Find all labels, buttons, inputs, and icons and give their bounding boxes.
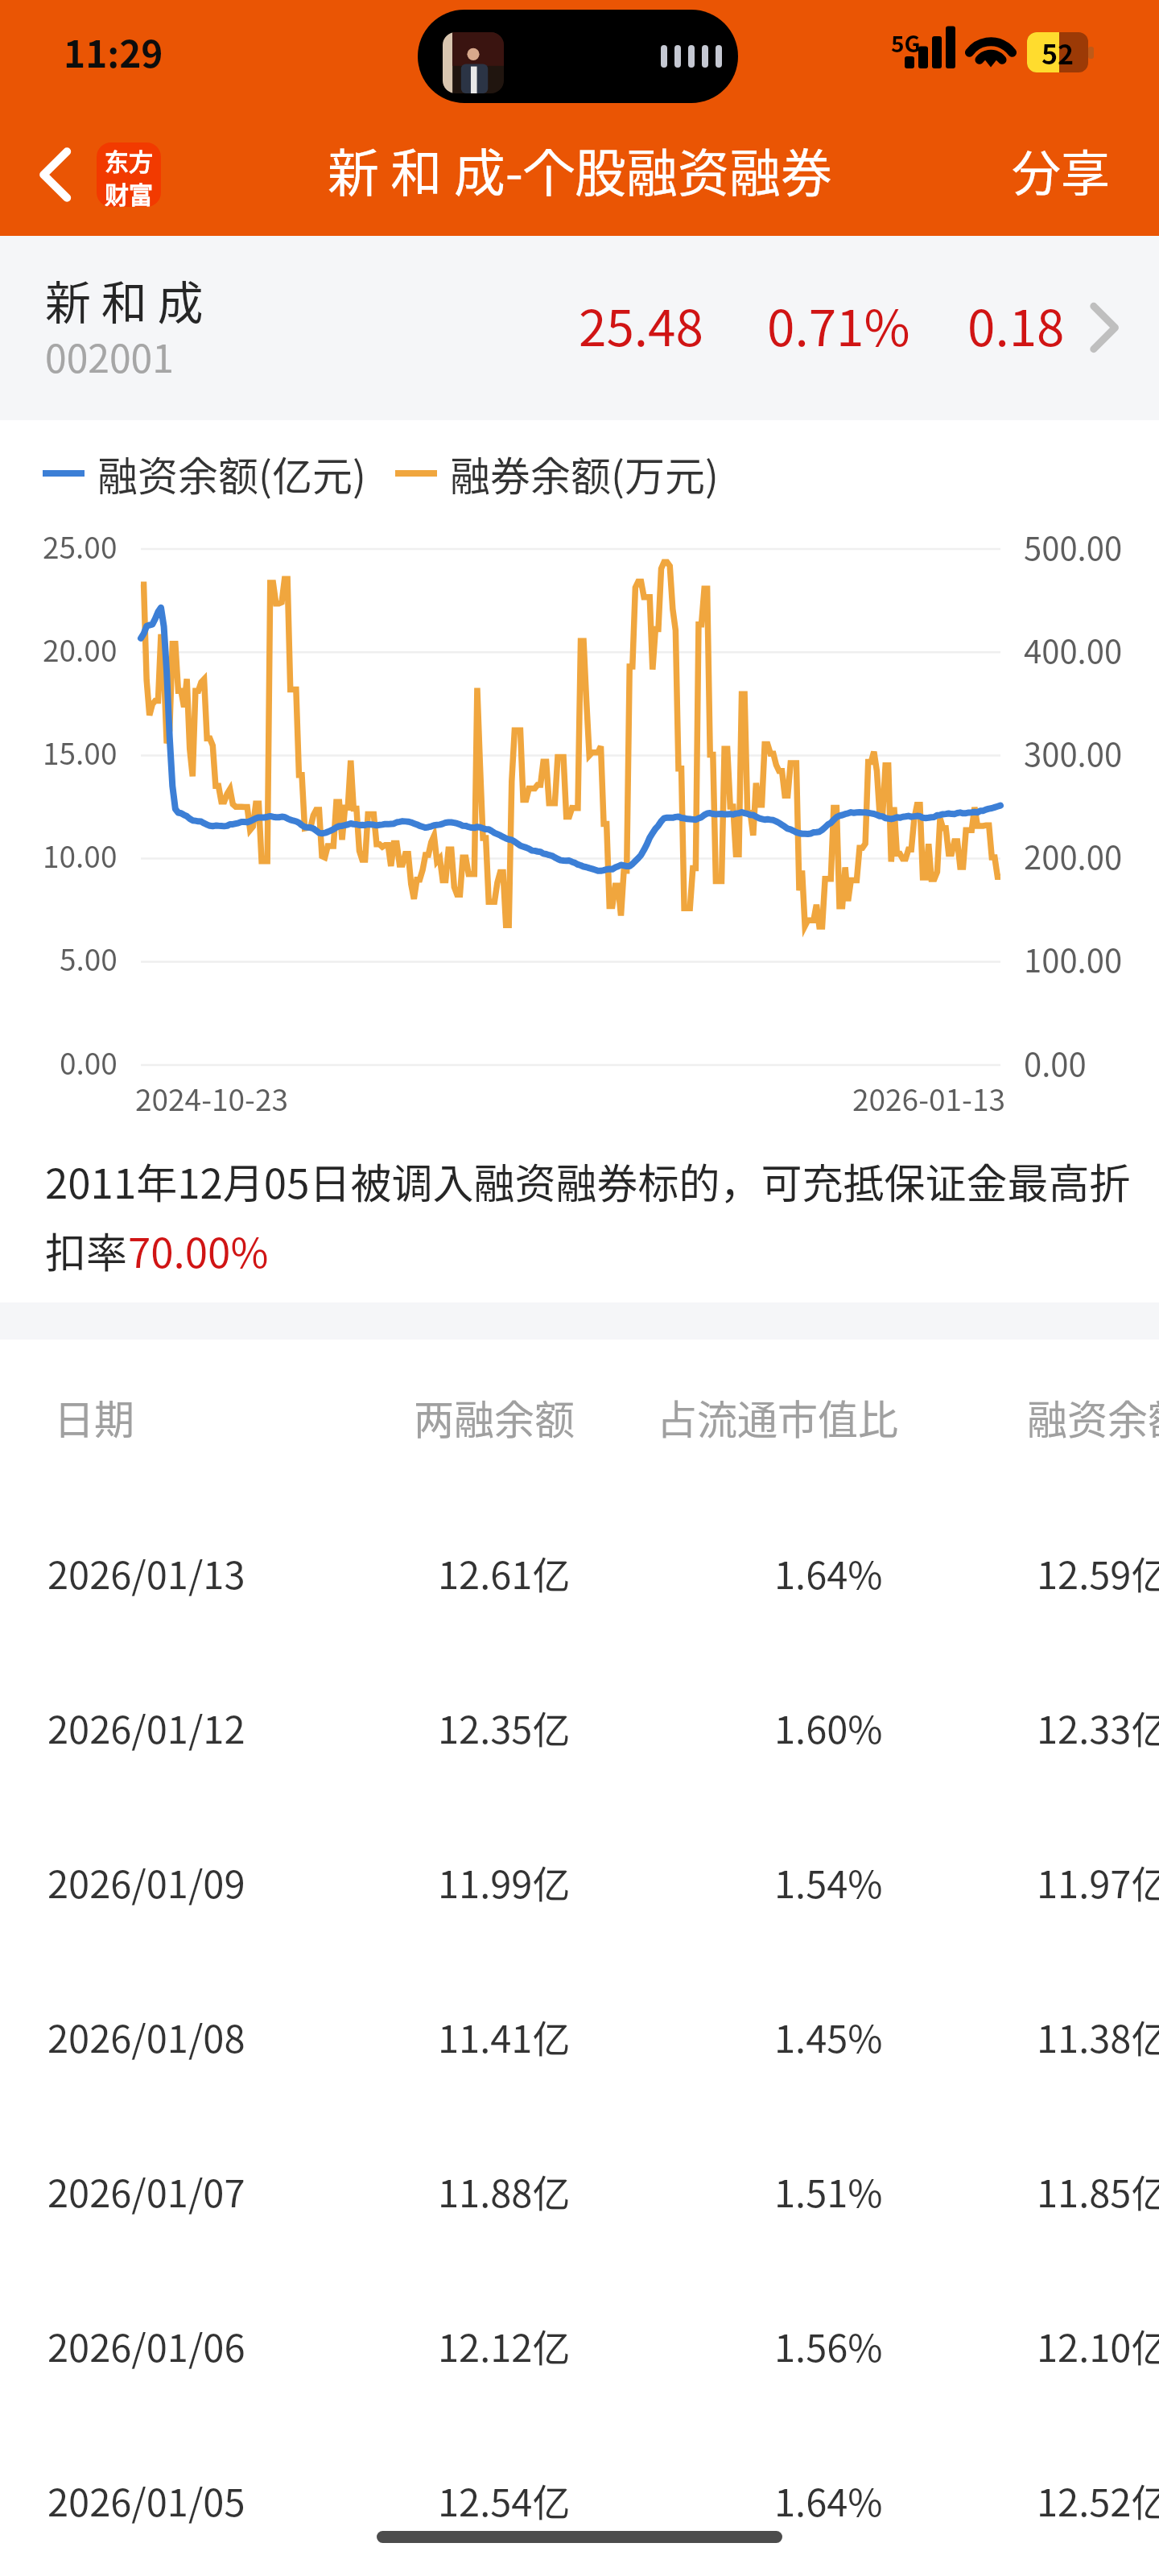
other: Back (39, 149, 74, 200)
staticText: 2026/01/05 (47, 2472, 245, 2527)
staticText: 2026/01/13 (47, 1545, 245, 1600)
staticText: 东方 (105, 142, 153, 177)
staticText: 占流通市值比 (657, 1388, 898, 1446)
staticText: 5.00 (60, 936, 118, 980)
staticText: 新 和 成-个股融资融券 (328, 132, 832, 207)
staticText: 300.00 (1024, 729, 1123, 776)
staticText: 2026-01-13 (852, 1076, 1005, 1120)
staticText: 2026/01/09 (47, 1854, 245, 1909)
staticText: 分享 (1012, 134, 1111, 205)
button[interactable]: 2026/01/06 (0, 2268, 1159, 2422)
button[interactable]: 2026/01/07 (0, 2113, 1159, 2268)
staticText: 11.85亿 (1037, 2163, 1159, 2218)
other: Wi-Fi (966, 31, 1016, 69)
staticText: 11:29 (64, 25, 163, 79)
staticText: 2011年12月05日被调入融资融券标的，可充抵保证金最高折 (45, 1151, 1131, 1211)
staticText: 12.59亿 (1037, 1545, 1159, 1600)
staticText: 2026/01/06 (47, 2318, 245, 2372)
staticText: 2026/01/08 (47, 2008, 245, 2063)
staticText: 15.00 (43, 730, 118, 774)
staticText: 25.00 (43, 524, 118, 568)
button[interactable]: 2026/01/13 (0, 1495, 1159, 1649)
staticText: 12.10亿 (1037, 2318, 1159, 2372)
staticText: 11.38亿 (1037, 2008, 1159, 2063)
staticText: 11.97亿 (1037, 1854, 1159, 1909)
staticText: 12.12亿 (438, 2318, 571, 2372)
staticText: 财富 (105, 175, 153, 207)
button[interactable]: 2026/01/05 (0, 2422, 1159, 2576)
staticText: 52 (1041, 33, 1074, 72)
staticText: 002001 (45, 328, 174, 384)
staticText: 500.00 (1024, 523, 1123, 570)
button[interactable]: Back (0, 126, 180, 223)
staticText: 12.61亿 (438, 1545, 571, 1600)
staticText: 100.00 (1024, 935, 1123, 982)
staticText: 0.71% (767, 288, 910, 361)
staticText: 400.00 (1024, 626, 1123, 673)
staticText: 1.54% (774, 1854, 883, 1909)
staticText: 0.00 (60, 1040, 118, 1084)
staticText: 1.60% (774, 1699, 883, 1754)
staticText: 5G (891, 27, 921, 60)
staticText: 扣率 (45, 1220, 128, 1280)
staticText: 1.51% (774, 2163, 883, 2218)
staticText: 两融余额 (414, 1388, 575, 1446)
staticText: 1.56% (774, 2318, 883, 2372)
staticText: 融资余额 (1027, 1388, 1159, 1446)
staticText: 200.00 (1024, 832, 1123, 879)
button[interactable]: 2026/01/09 (0, 1804, 1159, 1959)
staticText: 12.54亿 (438, 2472, 571, 2527)
staticText: 融券余额(万元) (450, 444, 719, 502)
staticText: 11.99亿 (438, 1854, 571, 1909)
staticText: 1.64% (774, 2472, 883, 2527)
button[interactable]: 2026/01/12 (0, 1649, 1159, 1804)
staticText: 12.33亿 (1037, 1699, 1159, 1754)
staticText: 11.41亿 (438, 2008, 571, 2063)
staticText: 日期 (54, 1388, 134, 1446)
staticText: 2024-10-23 (135, 1076, 288, 1120)
staticText: 10.00 (43, 833, 118, 877)
staticText: 0.00 (1024, 1039, 1087, 1086)
staticText: 0.18 (967, 288, 1065, 361)
staticText: 新 和 成 (45, 266, 204, 333)
staticText: 70.00% (128, 1220, 269, 1280)
staticText: 1.45% (774, 2008, 883, 2063)
staticText: 融资余额(亿元) (97, 444, 366, 502)
staticText: 20.00 (43, 627, 118, 671)
staticText: 12.52亿 (1037, 2472, 1159, 2527)
button[interactable]: 新 和 成 (0, 236, 1159, 420)
staticText: 12.35亿 (438, 1699, 571, 1754)
other: Battery 52 percent (1027, 32, 1095, 74)
staticText: 1.64% (774, 1545, 883, 1600)
staticText: 11.88亿 (438, 2163, 571, 2218)
other: Mobile signal 5G (890, 24, 958, 69)
staticText: 25.48 (579, 288, 703, 361)
button[interactable]: 分享 (963, 122, 1159, 228)
staticText: 2026/01/07 (47, 2163, 245, 2218)
button[interactable]: 2026/01/08 (0, 1959, 1159, 2113)
staticText: 2026/01/12 (47, 1699, 245, 1754)
